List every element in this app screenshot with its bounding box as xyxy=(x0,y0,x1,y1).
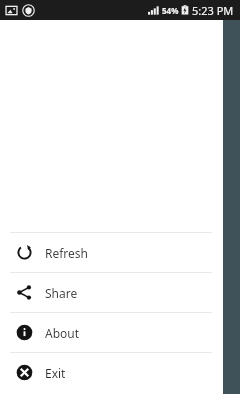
staticText: About xyxy=(45,325,80,341)
staticText: Share xyxy=(45,285,78,301)
staticText: 54% xyxy=(162,5,179,16)
staticText: Refresh xyxy=(45,245,89,261)
staticText: Exit xyxy=(45,365,66,381)
button[interactable]: Exit xyxy=(0,353,223,392)
staticText: 5:23 PM xyxy=(192,3,234,18)
button[interactable]: About xyxy=(0,313,223,352)
button[interactable]: Refresh xyxy=(0,233,223,272)
button[interactable]: Share xyxy=(0,273,223,312)
